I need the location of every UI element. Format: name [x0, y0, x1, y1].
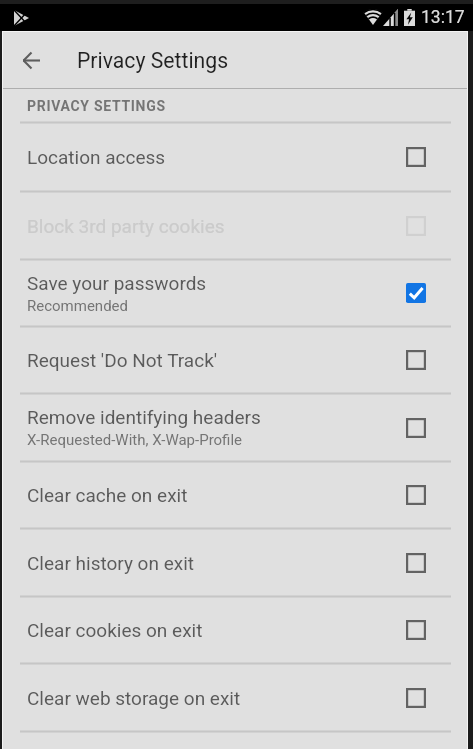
staticText: Privacy Settings — [77, 48, 229, 73]
staticText: Clear cache on exit — [27, 484, 188, 506]
staticText: X-Requested-With, X-Wap-Profile — [27, 431, 243, 449]
button[interactable]: Remove identifying headers — [3, 394, 467, 462]
button[interactable]: Clear history on exit — [3, 529, 467, 597]
button[interactable]: Request 'Do Not Track' — [3, 327, 467, 394]
staticText: Clear history on exit — [27, 552, 194, 574]
staticText: Save your passwords — [27, 272, 207, 294]
button[interactable]: Clear web storage on exit — [3, 664, 467, 732]
staticText: Block 3rd party cookies — [27, 215, 225, 237]
staticText: 13:17 — [421, 7, 465, 28]
button[interactable]: Clear cache on exit — [3, 462, 467, 529]
button[interactable]: Location access — [3, 123, 467, 192]
staticText: Request 'Do Not Track' — [27, 349, 218, 371]
button[interactable]: Save your passwords — [3, 260, 467, 327]
button[interactable]: Clear cookies on exit — [3, 597, 467, 664]
button[interactable]: Navigate up — [7, 36, 55, 84]
staticText: Clear web storage on exit — [27, 687, 241, 709]
button: Block 3rd party cookies — [3, 192, 467, 260]
staticText: PRIVACY SETTINGS — [27, 98, 166, 114]
staticText: Clear cookies on exit — [27, 619, 203, 641]
staticText: Recommended — [27, 297, 129, 315]
staticText: Location access — [27, 146, 166, 168]
staticText: Remove identifying headers — [27, 406, 261, 428]
